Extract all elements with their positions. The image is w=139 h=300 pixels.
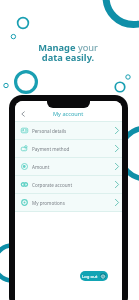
staticText: Manage your data easily. <box>38 41 98 64</box>
staticText: My account <box>53 110 84 118</box>
button[interactable]: Back <box>18 109 27 118</box>
staticText: Amount <box>32 164 50 170</box>
staticText: Corporate account <box>32 182 73 188</box>
button[interactable]: Personal details <box>15 122 122 139</box>
button[interactable]: Log out <box>80 271 108 281</box>
staticText: Personal details <box>32 128 67 134</box>
button[interactable]: My promotions <box>15 194 122 211</box>
button[interactable]: Payment method <box>15 140 122 157</box>
button[interactable]: Amount <box>15 158 122 175</box>
button[interactable]: Corporate account <box>15 176 122 193</box>
staticText: Log out <box>82 273 98 279</box>
staticText: Payment method <box>32 146 70 152</box>
staticText: My promotions <box>32 200 65 206</box>
